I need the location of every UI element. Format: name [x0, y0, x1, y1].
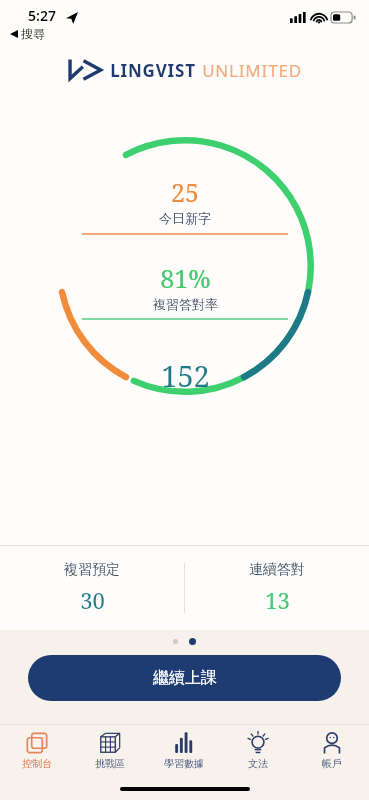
staticText: LINGVIST [110, 59, 196, 82]
staticText: 152 [161, 356, 210, 395]
staticText: 文法 [248, 757, 268, 770]
staticText: 25 [171, 175, 199, 209]
staticText: 控制台 [22, 757, 52, 770]
staticText: 連續答對 [249, 561, 305, 579]
staticText: 學習數據 [164, 757, 204, 770]
staticText: 複習預定 [64, 561, 120, 579]
button[interactable]: 挑戰區 [73, 732, 147, 770]
staticText: 5:27 [28, 6, 56, 25]
button[interactable]: 帳戶 [295, 732, 369, 770]
staticText: 今日新字 [159, 210, 211, 226]
staticText: 30 [80, 585, 105, 615]
staticText: 帳戶 [322, 757, 342, 770]
button[interactable]: 學習數據 [147, 732, 221, 770]
button[interactable]: 控制台 [0, 732, 73, 770]
button[interactable]: 繼續上課 [28, 655, 341, 701]
button[interactable]: 文法 [221, 732, 295, 770]
button[interactable]: 連續答對 [185, 561, 369, 615]
staticText: 複習答對率 [153, 296, 218, 312]
staticText: UNLIMITED [202, 59, 302, 82]
button[interactable]: 複習預定 [0, 561, 184, 615]
staticText: 搜尋 [21, 26, 45, 41]
staticText: 繼續上課 [153, 668, 217, 688]
staticText: 81% [160, 261, 211, 295]
staticText: 13 [265, 585, 290, 615]
staticText: 挑戰區 [95, 757, 125, 770]
